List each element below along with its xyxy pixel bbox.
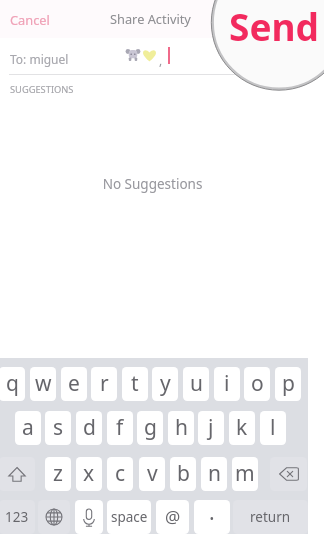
button[interactable]: t — [122, 367, 148, 401]
staticText: z — [53, 459, 63, 488]
staticText: b — [177, 459, 190, 488]
staticText: , — [159, 52, 163, 68]
staticText: i — [224, 369, 230, 398]
staticText: n — [208, 459, 221, 488]
button[interactable]: c — [107, 457, 133, 491]
staticText: SUGGESTIONS — [10, 83, 74, 96]
button[interactable]: z — [45, 457, 71, 491]
staticText: c — [115, 459, 126, 488]
button[interactable]: 123 — [0, 500, 35, 534]
button[interactable]: f — [107, 411, 133, 445]
staticText: 123 — [5, 508, 29, 526]
staticText: h — [175, 413, 188, 442]
staticText: e — [68, 369, 80, 398]
staticText: Share Activity — [110, 10, 191, 27]
staticText: @ — [165, 505, 181, 528]
staticText: v — [147, 459, 158, 488]
button[interactable]: m — [232, 457, 258, 491]
button[interactable]: o — [244, 367, 270, 401]
button[interactable]: mic — [75, 500, 103, 534]
button[interactable]: Send — [229, 1, 319, 51]
staticText: m — [235, 459, 255, 488]
button[interactable]: v — [139, 457, 165, 491]
button[interactable]: . — [194, 500, 230, 534]
button[interactable]: shift — [0, 457, 35, 491]
staticText: g — [144, 413, 157, 442]
staticText: s — [53, 413, 64, 442]
button[interactable]: h — [168, 411, 194, 445]
staticText: return — [250, 508, 291, 526]
staticText: q — [6, 369, 19, 398]
staticText: y — [160, 369, 171, 398]
button[interactable]: @ — [156, 500, 189, 534]
button[interactable]: d — [76, 411, 102, 445]
button[interactable]: n — [201, 457, 227, 491]
button[interactable]: globe — [38, 500, 70, 534]
staticText: Send — [229, 1, 319, 51]
button[interactable]: e — [61, 367, 87, 401]
button[interactable]: y — [152, 367, 178, 401]
button[interactable]: s — [45, 411, 71, 445]
button[interactable]: q — [0, 367, 25, 401]
button[interactable]: return — [233, 500, 308, 534]
staticText: space — [111, 508, 148, 526]
button[interactable]: backspace — [270, 457, 307, 491]
staticText: k — [236, 413, 248, 442]
button[interactable]: l — [260, 411, 286, 445]
staticText: Cancel — [10, 11, 50, 28]
staticText: . — [209, 500, 215, 527]
staticText: w — [35, 369, 52, 398]
staticText: a — [22, 413, 34, 442]
button[interactable]: j — [198, 411, 224, 445]
button[interactable]: b — [170, 457, 196, 491]
button[interactable]: r — [91, 367, 117, 401]
staticText: x — [83, 459, 95, 488]
button[interactable]: k — [229, 411, 255, 445]
button[interactable]: p — [275, 367, 301, 401]
staticText: u — [190, 369, 203, 398]
button[interactable]: Cancel — [10, 11, 50, 28]
button[interactable]: g — [137, 411, 163, 445]
button[interactable]: u — [183, 367, 209, 401]
staticText: d — [83, 413, 96, 442]
staticText: To: miguel — [10, 51, 69, 67]
staticText: No Suggestions — [0, 175, 305, 193]
staticText: r — [100, 369, 109, 398]
staticText: j — [208, 413, 214, 442]
staticText: l — [270, 413, 276, 442]
staticText: t — [131, 369, 139, 398]
button[interactable]: a — [15, 411, 41, 445]
button[interactable]: i — [214, 367, 240, 401]
button[interactable]: space — [107, 500, 151, 534]
staticText: o — [251, 369, 264, 398]
button[interactable]: x — [76, 457, 102, 491]
staticText: p — [282, 369, 295, 398]
button[interactable]: w — [30, 367, 56, 401]
staticText: f — [116, 413, 124, 442]
